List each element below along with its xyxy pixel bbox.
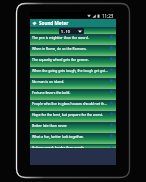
other: App icon <box>32 21 37 26</box>
button[interactable]: Favorite <box>109 57 114 61</box>
button[interactable]: Favorite <box>109 134 114 138</box>
button[interactable]: App icon <box>30 19 116 27</box>
button[interactable]: Hope for the best, but prepare for the w… <box>30 111 116 122</box>
button[interactable]: Fortune favors the bold. <box>30 89 116 100</box>
staticText: What a fun, better luck together. <box>32 134 108 139</box>
staticText: Sound Meter <box>39 20 69 26</box>
button[interactable]: Favorite <box>109 145 114 148</box>
button[interactable]: When the going gets tough, the tough get… <box>30 67 116 78</box>
button[interactable]: Better late than never. <box>30 122 116 133</box>
button[interactable]: When in Rome, do as the Romans. <box>30 45 116 56</box>
button[interactable]: The pen is mightier than the sword. <box>30 34 116 45</box>
button[interactable]: Actions speak louder than words. <box>30 144 116 148</box>
button[interactable]: What a fun, better luck together. <box>30 133 116 144</box>
button[interactable]: Favorite <box>109 90 114 94</box>
staticText: People who live in glass houses should n… <box>32 101 108 106</box>
staticText: When in Rome, do as the Romans. <box>32 46 108 51</box>
staticText: The pen is mightier than the sword. <box>32 35 108 40</box>
button[interactable]: People who live in glass houses should n… <box>30 100 116 111</box>
staticText: No man is an island. <box>32 79 108 84</box>
staticText: When the going gets tough, the tough get… <box>32 68 108 73</box>
staticText: 1 - 10 <box>61 29 70 34</box>
staticText: 11:23 <box>102 13 114 19</box>
button[interactable]: Favorite <box>109 46 114 50</box>
button[interactable]: 1 - 10 <box>59 28 84 34</box>
button[interactable]: Favorite <box>109 35 114 39</box>
button[interactable]: No man is an island. <box>30 78 116 89</box>
staticText: The squeaky wheel gets the grease. <box>32 57 108 62</box>
button[interactable]: The squeaky wheel gets the grease. <box>30 56 116 67</box>
staticText: Fortune favors the bold. <box>32 90 108 95</box>
staticText: Actions speak louder than words. <box>32 145 108 148</box>
button[interactable]: Favorite <box>109 79 114 83</box>
button[interactable]: Favorite <box>109 68 114 72</box>
staticText: Hope for the best, but prepare for the w… <box>32 112 108 117</box>
button[interactable]: Favorite <box>109 123 114 127</box>
staticText: Better late than never. <box>32 123 108 128</box>
button[interactable]: Favorite <box>109 112 114 116</box>
button[interactable]: Favorite <box>109 101 114 105</box>
